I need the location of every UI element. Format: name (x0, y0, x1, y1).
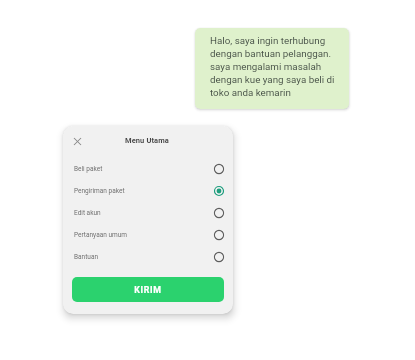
button[interactable]: Close (65, 129, 89, 153)
button[interactable]: Edit akun (63, 202, 233, 224)
staticText: Pengiriman paket (74, 187, 125, 195)
staticText: Beli paket (74, 165, 103, 173)
button[interactable]: KIRIM (72, 277, 224, 302)
staticText: Bantuan (74, 253, 99, 261)
button[interactable]: Pengiriman paket (63, 180, 233, 202)
staticText: Edit akun (74, 209, 101, 217)
button[interactable]: Pertanyaan umum (63, 224, 233, 246)
button[interactable]: Bantuan (63, 246, 233, 268)
button[interactable]: Beli paket (63, 158, 233, 180)
staticText: KIRIM (134, 285, 162, 295)
staticText: Halo, saya ingin terhubung dengan bantua… (210, 35, 335, 99)
staticText: Pertanyaan umum (74, 231, 127, 239)
staticText: Menu Utama (125, 136, 169, 145)
